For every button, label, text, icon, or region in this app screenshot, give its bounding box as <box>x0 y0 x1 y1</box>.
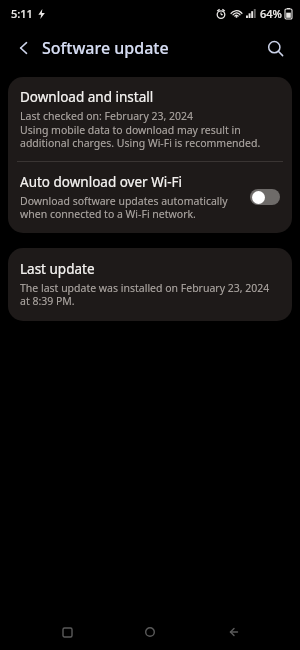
button[interactable]: Auto download over Wi-Fi <box>8 162 292 233</box>
button[interactable]: Download and install <box>8 77 292 161</box>
button[interactable]: Home <box>133 615 167 649</box>
button[interactable]: Search <box>259 32 291 64</box>
staticText: Last update <box>20 260 95 278</box>
staticText: 5:11 <box>11 6 33 21</box>
staticText: Software update <box>42 37 169 59</box>
staticText: Download and install <box>20 88 154 106</box>
staticText: 64% <box>260 6 282 21</box>
button[interactable]: Recents <box>50 615 84 649</box>
staticText: The last update was installed on Februar… <box>20 281 280 308</box>
staticText: Last checked on: February 23, 2024 <box>20 109 194 123</box>
button[interactable]: Last update <box>8 248 292 321</box>
button[interactable]: Auto download over Wi-Fi toggle <box>250 189 280 205</box>
staticText: Download software updates automatically … <box>20 194 242 221</box>
staticText: Using mobile data to download may result… <box>20 123 280 150</box>
staticText: Auto download over Wi-Fi <box>20 173 183 191</box>
button[interactable]: Back <box>8 32 40 64</box>
button[interactable]: Back <box>217 615 251 649</box>
